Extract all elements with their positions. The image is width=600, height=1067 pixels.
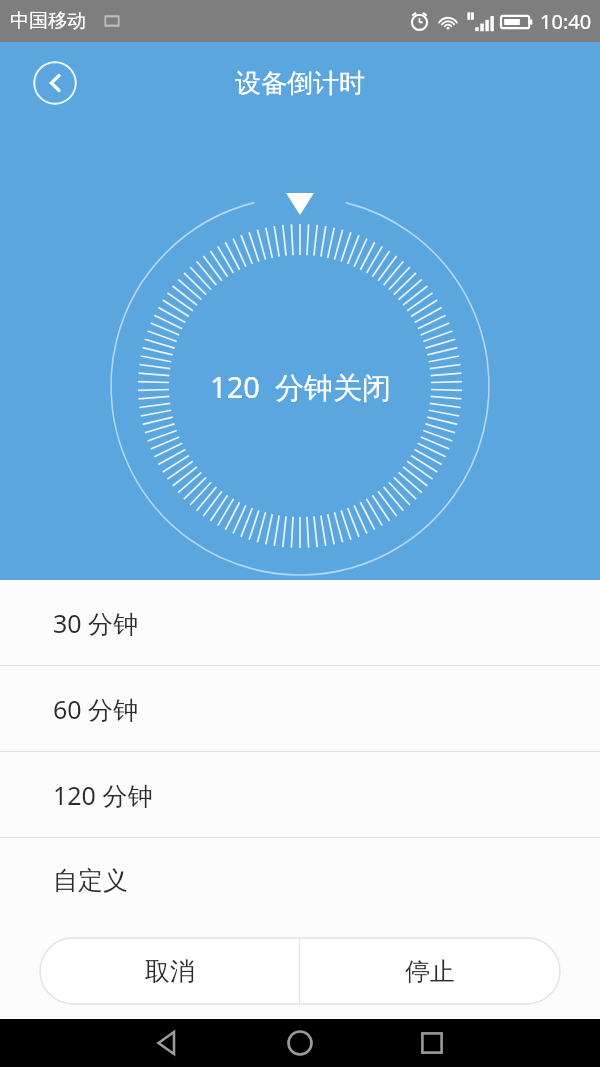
- button[interactable]: 120 分钟: [0, 752, 600, 837]
- button[interactable]: 60 分钟: [0, 666, 600, 751]
- staticText: 120 分钟: [53, 778, 153, 812]
- button[interactable]: Back: [143, 1019, 193, 1067]
- button[interactable]: 停止: [300, 938, 560, 1004]
- staticText: 120 分钟关闭: [210, 367, 391, 407]
- button[interactable]: 自定义: [0, 838, 600, 923]
- staticText: 60 分钟: [53, 692, 139, 726]
- staticText: 设备倒计时: [235, 67, 365, 100]
- button[interactable]: 30 分钟: [0, 580, 600, 665]
- staticText: 取消: [145, 956, 195, 987]
- staticText: 停止: [405, 956, 455, 987]
- button[interactable]: Back: [33, 61, 77, 105]
- button[interactable]: 取消: [40, 938, 299, 1004]
- staticText: 中国移动: [10, 9, 86, 33]
- staticText: 自定义: [53, 865, 128, 896]
- button[interactable]: Recents: [407, 1019, 457, 1067]
- staticText: 30 分钟: [53, 606, 139, 640]
- staticText: 10:40: [540, 8, 592, 35]
- button[interactable]: Home: [275, 1019, 325, 1067]
